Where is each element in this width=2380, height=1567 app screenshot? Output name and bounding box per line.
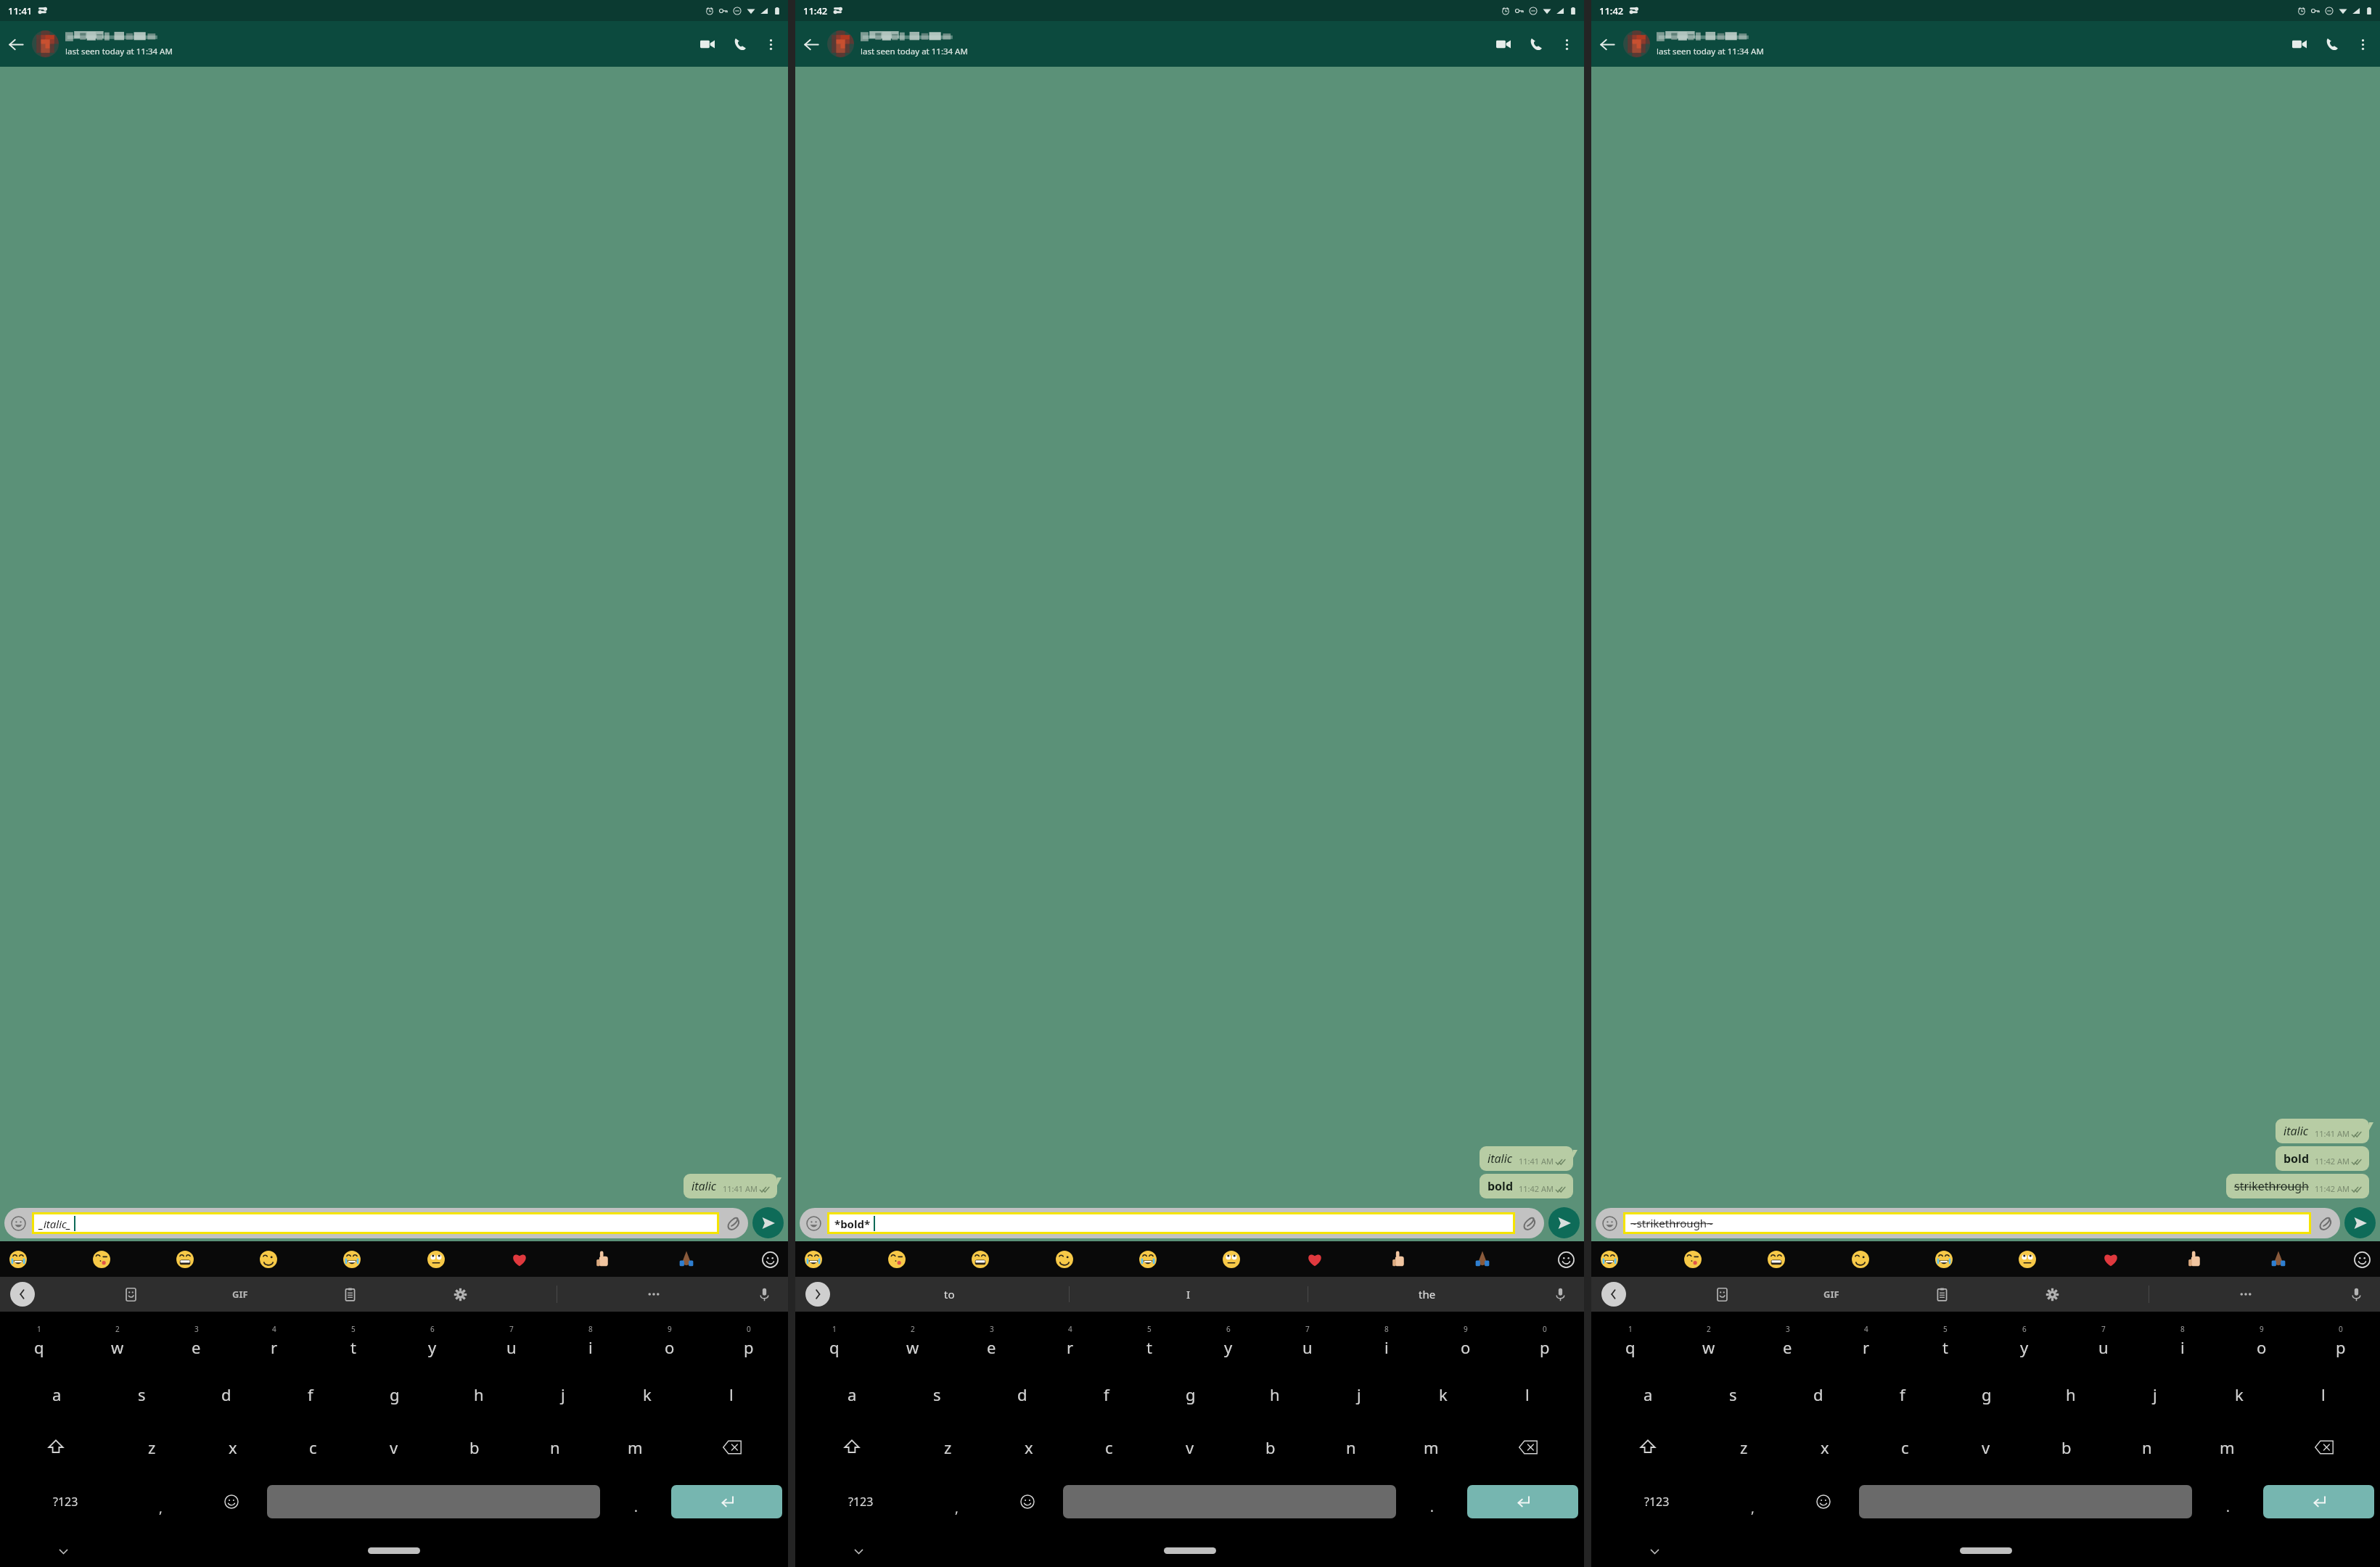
button[interactable]: 1 [795, 1315, 874, 1367]
button[interactable]: h [2029, 1367, 2113, 1420]
button[interactable]: Settings [2038, 1280, 2066, 1308]
button[interactable]: 3 [1748, 1315, 1826, 1367]
button[interactable]: n [1310, 1420, 1391, 1473]
button[interactable]: Emoji 9 [2350, 1247, 2374, 1272]
button[interactable]: Shift [795, 1420, 908, 1473]
button[interactable]: d [980, 1367, 1064, 1420]
button[interactable]: z [112, 1420, 192, 1473]
button[interactable]: Emoji 5 [2015, 1247, 2040, 1272]
button[interactable]: Contact photo [827, 30, 854, 57]
button[interactable]: Emoji [1596, 1209, 1623, 1237]
button[interactable]: Send [752, 1207, 784, 1238]
button[interactable]: Home [1164, 1547, 1216, 1554]
button[interactable]: 6 [393, 1315, 472, 1367]
button[interactable]: Emoji 5 [1219, 1247, 1244, 1272]
button[interactable]: j [1317, 1367, 1401, 1420]
button[interactable]: Attach [1515, 1209, 1544, 1238]
button[interactable]: 3 [952, 1315, 1030, 1367]
button[interactable]: , [125, 1473, 196, 1530]
button[interactable]: *bold* [829, 1214, 1513, 1232]
button[interactable]: last seen today at 11:34 AM [861, 30, 1487, 57]
button[interactable]: bold [1480, 1174, 1573, 1198]
button[interactable]: Emoji 2 [968, 1247, 993, 1272]
button[interactable]: Emoji 6 [1302, 1247, 1327, 1272]
button[interactable]: Back [1591, 28, 1623, 60]
button[interactable]: a [810, 1367, 895, 1420]
button[interactable]: g [353, 1367, 437, 1420]
button[interactable]: m [2187, 1420, 2268, 1473]
button[interactable]: Enter [1467, 1485, 1578, 1518]
button[interactable]: 4 [1030, 1315, 1109, 1367]
button[interactable]: 6 [1985, 1315, 2064, 1367]
button[interactable]: Hide keyboard [1644, 1540, 1665, 1562]
button[interactable]: s [99, 1367, 184, 1420]
button[interactable]: 9 [2222, 1315, 2301, 1367]
button[interactable]: Hide keyboard [52, 1540, 74, 1562]
button[interactable]: Emoji 4 [1932, 1247, 1956, 1272]
button[interactable]: Emoji 9 [758, 1247, 782, 1272]
button[interactable]: _italic_ [34, 1214, 717, 1232]
button[interactable]: italic [1480, 1146, 1573, 1171]
button[interactable]: Video call [691, 28, 724, 61]
button[interactable]: Stickers [1708, 1280, 1736, 1308]
button[interactable]: f [268, 1367, 353, 1420]
button[interactable]: j [2113, 1367, 2197, 1420]
button[interactable]: Emoji 0 [6, 1247, 30, 1272]
button[interactable]: More options [2348, 30, 2377, 59]
button[interactable]: Enter [671, 1485, 782, 1518]
button[interactable]: 6 [1189, 1315, 1268, 1367]
button[interactable]: k [1401, 1367, 1485, 1420]
button[interactable]: italic [2276, 1119, 2369, 1143]
button[interactable]: v [353, 1420, 434, 1473]
button[interactable]: Home [1960, 1547, 2012, 1554]
button[interactable]: Emoji 3 [1848, 1247, 1873, 1272]
button[interactable]: Voice input [750, 1280, 778, 1308]
button[interactable]: m [595, 1420, 676, 1473]
button[interactable]: Send [2344, 1207, 2376, 1238]
button[interactable]: 3 [157, 1315, 235, 1367]
button[interactable]: 7 [472, 1315, 551, 1367]
button[interactable]: Emoji 8 [2266, 1247, 2291, 1272]
button[interactable]: Emoji 3 [256, 1247, 281, 1272]
button[interactable]: Space [267, 1485, 600, 1518]
button[interactable]: Emoji 2 [1764, 1247, 1789, 1272]
button[interactable]: z [908, 1420, 988, 1473]
button[interactable]: Backspace [676, 1420, 788, 1473]
button[interactable]: Shift [0, 1420, 112, 1473]
button[interactable]: f [1860, 1367, 1945, 1420]
button[interactable]: Emoji 0 [1597, 1247, 1622, 1272]
button[interactable]: b [1230, 1420, 1310, 1473]
button[interactable]: 2 [78, 1315, 157, 1367]
button[interactable]: Emoji 7 [2183, 1247, 2207, 1272]
button[interactable]: c [1069, 1420, 1149, 1473]
button[interactable]: Emoji 1 [1681, 1247, 1705, 1272]
button[interactable]: z [1704, 1420, 1784, 1473]
button[interactable]: Emoji [1788, 1473, 1859, 1530]
button[interactable]: Emoji 5 [424, 1247, 448, 1272]
button[interactable]: 0 [2301, 1315, 2380, 1367]
button[interactable]: . [600, 1473, 671, 1530]
button[interactable]: 1 [1591, 1315, 1670, 1367]
button[interactable]: x [192, 1420, 273, 1473]
button[interactable]: 9 [1426, 1315, 1505, 1367]
button[interactable]: Voice input [2342, 1280, 2370, 1308]
button[interactable]: a [15, 1367, 99, 1420]
button[interactable]: GIF [1818, 1280, 1845, 1308]
button[interactable]: Emoji 7 [591, 1247, 615, 1272]
button[interactable]: 8 [1347, 1315, 1426, 1367]
button[interactable]: c [273, 1420, 353, 1473]
button[interactable]: 7 [2064, 1315, 2143, 1367]
button[interactable]: d [1776, 1367, 1860, 1420]
button[interactable]: Emoji 7 [1387, 1247, 1411, 1272]
button[interactable]: Voice input [1546, 1280, 1574, 1308]
button[interactable]: j [521, 1367, 605, 1420]
button[interactable]: I [1070, 1277, 1308, 1312]
button[interactable]: 2 [1670, 1315, 1748, 1367]
button[interactable]: GIF [226, 1280, 254, 1308]
button[interactable]: Emoji 0 [801, 1247, 826, 1272]
button[interactable]: Settings [446, 1280, 474, 1308]
button[interactable]: n [2106, 1420, 2187, 1473]
button[interactable]: h [437, 1367, 521, 1420]
button[interactable]: ?123 [1597, 1473, 1717, 1530]
button[interactable]: Space [1063, 1485, 1396, 1518]
